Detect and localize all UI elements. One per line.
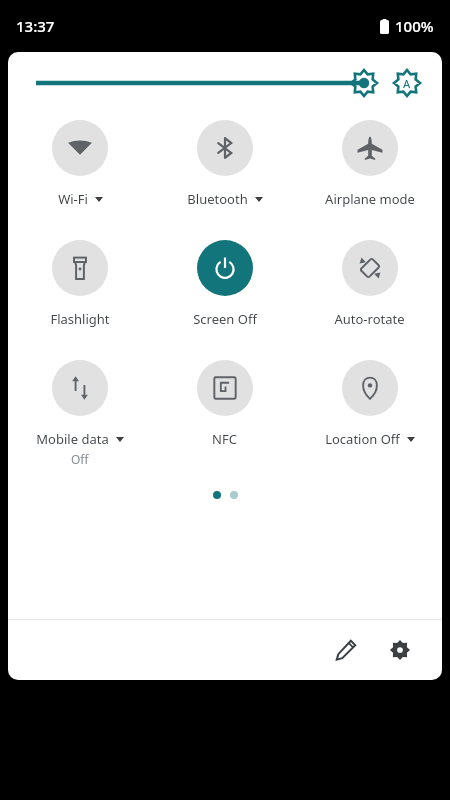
staticText: Location Off	[325, 430, 400, 448]
staticText: Screen Off	[193, 310, 257, 328]
staticText: 13:37	[16, 16, 55, 36]
button[interactable]: Brightness	[36, 66, 380, 100]
button[interactable]: NFC	[152, 360, 297, 448]
button[interactable]: Bluetooth	[152, 120, 297, 208]
staticText: Mobile data	[36, 430, 109, 448]
button[interactable]: Flashlight	[8, 240, 152, 328]
button[interactable]: Airplane mode	[297, 120, 442, 208]
staticText: Flashlight	[50, 310, 110, 328]
staticText: Auto-rotate	[334, 310, 405, 328]
staticText: 100%	[395, 16, 434, 36]
button[interactable]: Settings	[378, 628, 422, 672]
staticText: Wi-Fi	[58, 190, 88, 208]
button[interactable]: Wi-Fi	[8, 120, 152, 208]
button[interactable]: Location Off	[297, 360, 442, 448]
button[interactable]: Edit tiles	[324, 628, 368, 672]
button[interactable]: Auto-rotate	[297, 240, 442, 328]
button[interactable]: Auto brightness	[390, 66, 424, 100]
staticText: Airplane mode	[325, 190, 415, 208]
staticText: NFC	[212, 430, 237, 448]
staticText: A	[403, 76, 411, 91]
button[interactable]: Screen Off	[152, 240, 297, 328]
staticText: Bluetooth	[187, 190, 248, 208]
staticText: Off	[71, 451, 89, 467]
button[interactable]: Mobile data	[8, 360, 152, 467]
